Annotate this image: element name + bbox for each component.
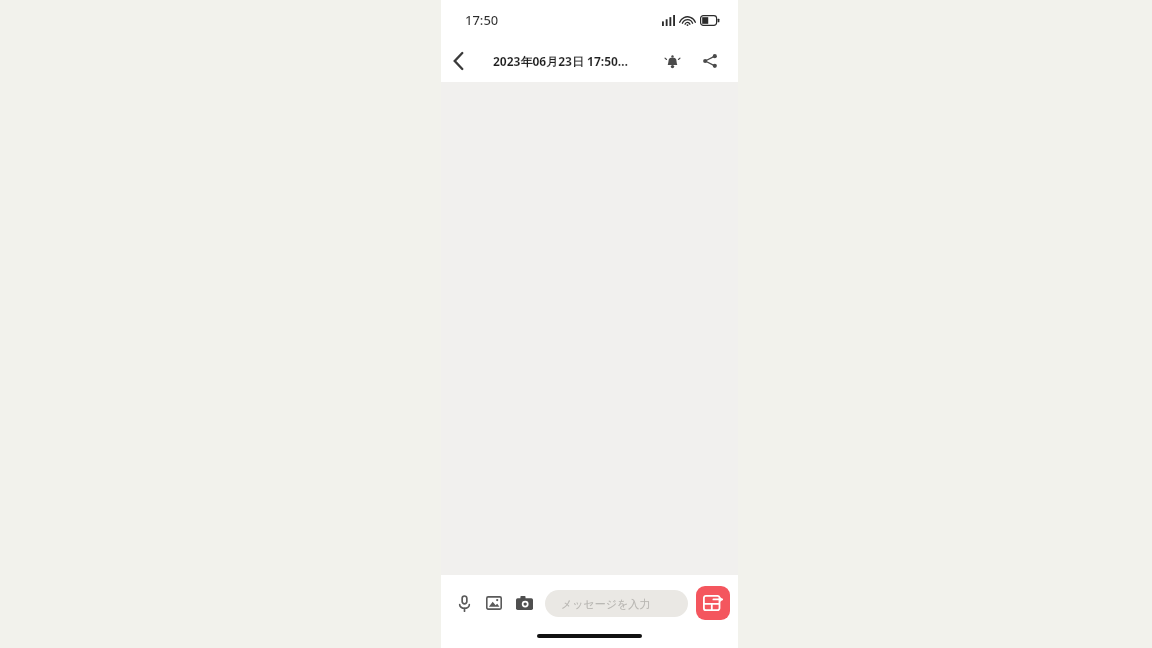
button[interactable]: Share (694, 45, 726, 77)
button[interactable]: Notifications (656, 45, 688, 77)
staticText: 17:50 (465, 11, 499, 29)
staticText: メッセージを入力 (561, 597, 651, 611)
button[interactable]: Voice message (451, 590, 477, 616)
button[interactable]: メッセージを入力 (545, 590, 688, 617)
staticText: 2023年06月23日 17:50… (493, 53, 629, 69)
button[interactable]: Back (441, 44, 475, 78)
button[interactable]: Gallery (481, 590, 507, 616)
button[interactable]: Send template (696, 586, 730, 620)
button[interactable]: Camera (511, 590, 537, 616)
